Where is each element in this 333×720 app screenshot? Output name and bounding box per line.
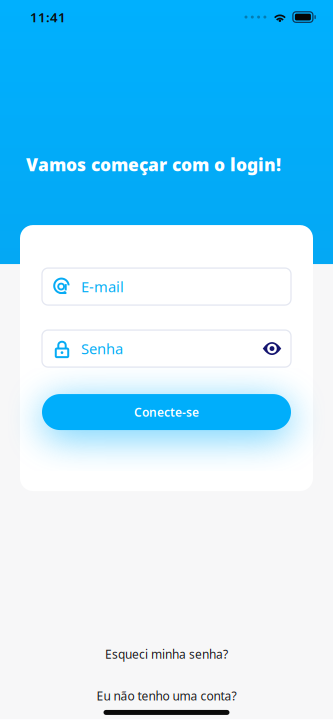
staticText: Esqueci minha senha? <box>105 646 228 662</box>
staticText: 11:41 <box>30 8 66 26</box>
button[interactable]: E-mail <box>42 268 291 305</box>
button[interactable]: Eu não tenho uma conta? <box>80 682 252 710</box>
staticText: Eu não tenho uma conta? <box>96 688 236 704</box>
button[interactable]: Mostrar senha <box>261 338 283 360</box>
staticText: Vamos começar com o login! <box>26 153 281 176</box>
button[interactable]: Senha <box>42 330 291 367</box>
staticText: Conecte-se <box>134 404 199 420</box>
staticText: Senha <box>81 339 123 358</box>
button[interactable]: Conecte-se <box>42 394 291 430</box>
button[interactable]: Esqueci minha senha? <box>89 640 244 668</box>
staticText: E-mail <box>81 277 124 296</box>
